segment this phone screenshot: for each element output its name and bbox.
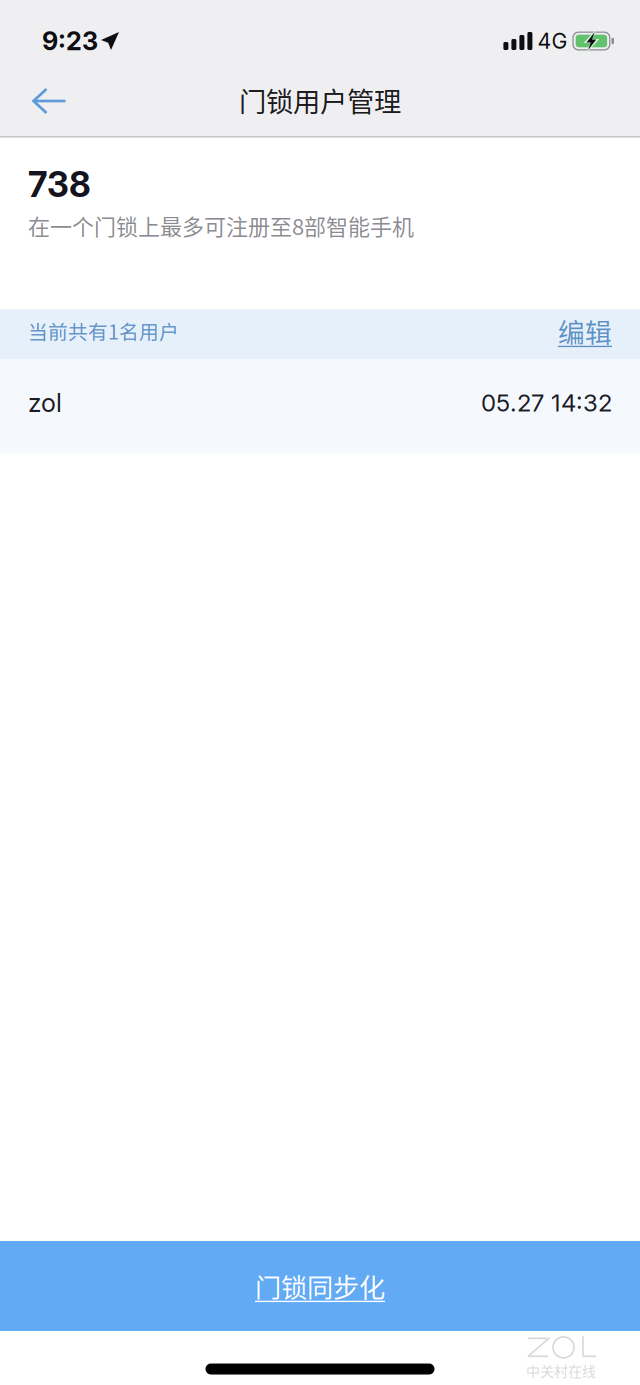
- staticText: 编辑: [558, 311, 612, 350]
- staticText: 中关村在线: [526, 1360, 596, 1381]
- staticText: 在一个门锁上最多可注册至8部智能手机: [28, 209, 414, 241]
- button[interactable]: 门锁同步化: [0, 1241, 640, 1331]
- staticText: 9:23: [42, 26, 98, 56]
- button[interactable]: Back: [0, 75, 90, 136]
- staticText: zol: [28, 387, 62, 418]
- button[interactable]: zol: [0, 359, 640, 453]
- staticText: 当前共有1名用户: [28, 316, 179, 345]
- staticText: 4G: [537, 28, 567, 54]
- staticText: 门锁用户管理: [239, 80, 401, 120]
- staticText: 门锁同步化: [255, 1267, 385, 1305]
- staticText: 05.27 14:32: [481, 388, 612, 417]
- staticText: 738: [28, 163, 91, 205]
- button[interactable]: 编辑: [558, 311, 612, 350]
